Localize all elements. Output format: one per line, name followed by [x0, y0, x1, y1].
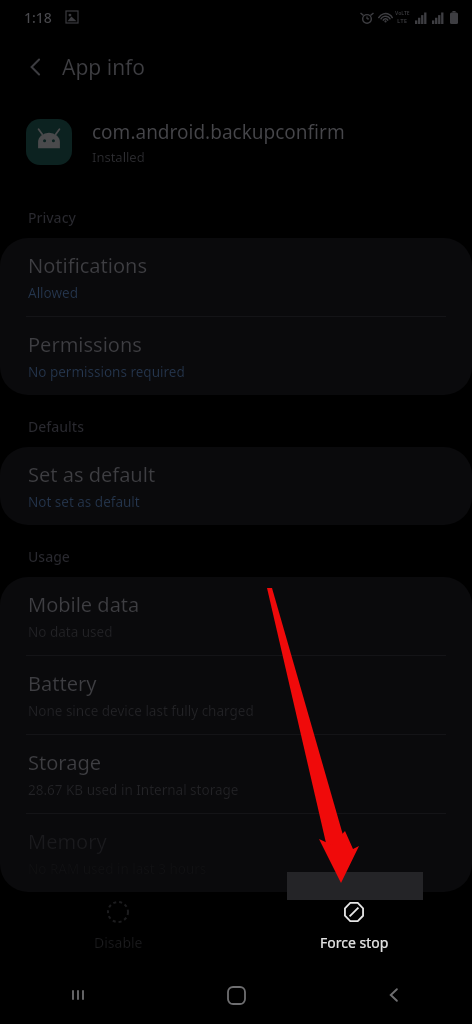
button[interactable]: Force stop — [236, 884, 472, 968]
staticText: VoLTE — [395, 10, 410, 17]
staticText: Battery — [28, 670, 97, 697]
button[interactable]: Back — [315, 966, 472, 1024]
staticText: Privacy — [28, 208, 76, 227]
staticText: No data used — [28, 623, 113, 641]
staticText: 28.67 KB used in Internal storage — [28, 781, 239, 799]
button[interactable]: Recent apps — [0, 966, 158, 1024]
staticText: App info — [62, 53, 146, 82]
button[interactable]: Disable — [0, 884, 236, 968]
staticText: Disable — [94, 933, 143, 952]
button[interactable]: Battery — [0, 656, 472, 734]
staticText: Permissions — [28, 331, 142, 358]
staticText: Notifications — [28, 252, 147, 279]
staticText: Memory — [28, 828, 107, 855]
staticText: Storage — [28, 749, 101, 776]
staticText: Defaults — [28, 417, 84, 436]
staticText: Set as default — [28, 461, 156, 488]
button[interactable]: Notifications — [0, 238, 472, 316]
button[interactable]: Mobile data — [0, 577, 472, 655]
staticText: Usage — [28, 547, 70, 566]
staticText: com.android.backupconfirm — [92, 119, 345, 145]
button[interactable]: Set as default — [0, 447, 472, 525]
button[interactable]: Storage — [0, 735, 472, 813]
staticText: No permissions required — [28, 363, 185, 381]
staticText: None since device last fully charged — [28, 702, 254, 720]
staticText: Force stop — [320, 933, 389, 952]
button[interactable]: Permissions — [0, 317, 472, 395]
button[interactable]: Memory — [0, 814, 472, 892]
staticText: 1:18 — [24, 8, 52, 27]
staticText: Not set as default — [28, 493, 140, 511]
staticText: Mobile data — [28, 591, 140, 618]
button[interactable]: Navigate up — [12, 43, 60, 91]
staticText: Allowed — [28, 284, 79, 302]
staticText: Installed — [92, 148, 145, 166]
button[interactable]: Home — [158, 966, 315, 1024]
staticText: LTE — [397, 17, 408, 25]
